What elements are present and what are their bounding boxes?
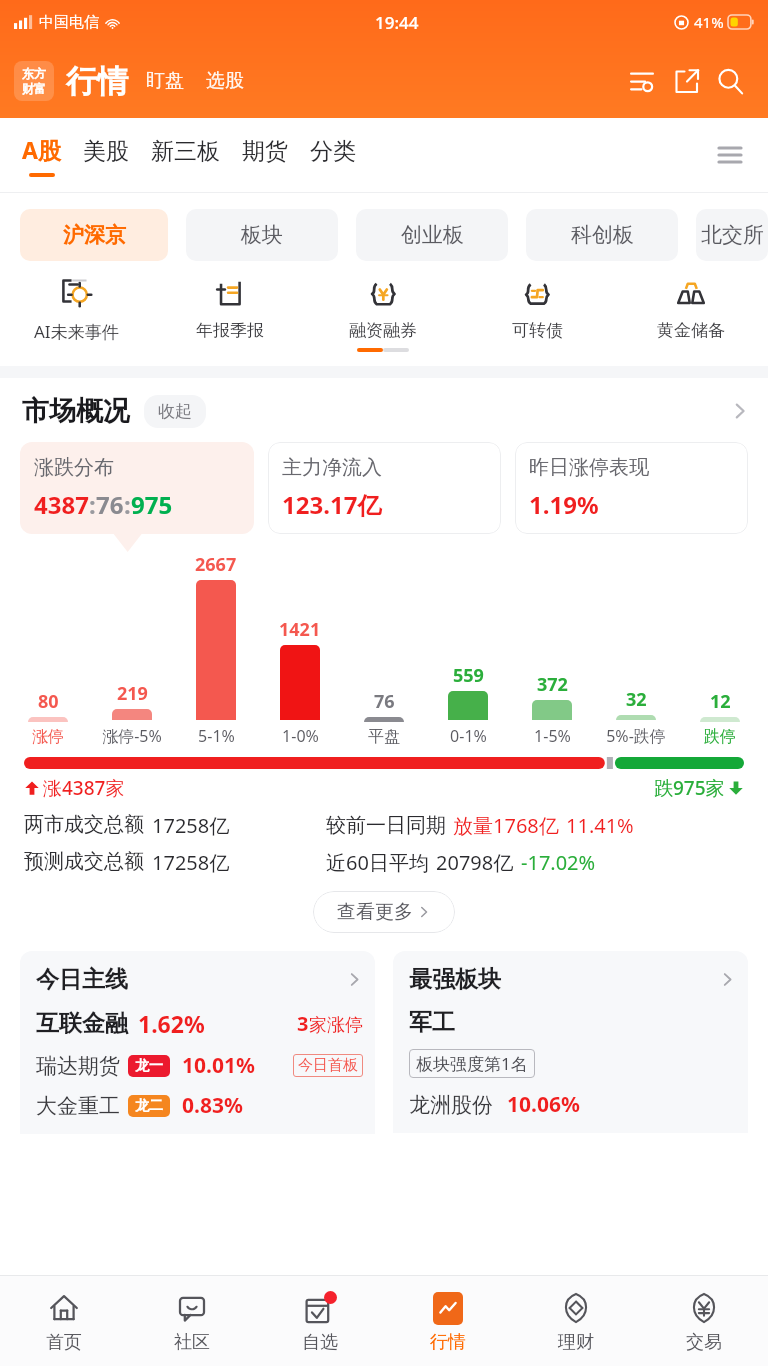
button[interactable]: 559 [426, 663, 510, 747]
staticText: 372 [537, 672, 568, 697]
staticText: 5-1% [198, 725, 235, 747]
staticText: 0-1% [450, 725, 487, 747]
staticText: 主力净流入 [282, 455, 382, 480]
staticText: 理财 [558, 1331, 594, 1354]
staticText: 今日首板 [298, 1056, 358, 1075]
staticText: 东方 [22, 66, 46, 81]
staticText: 11.41% [566, 812, 634, 839]
staticText: 选股 [206, 69, 244, 93]
staticText: 收起 [158, 401, 192, 422]
staticText: 昨日涨停表现 [529, 455, 649, 480]
button[interactable]: 融资融券 [306, 267, 460, 358]
staticText: 行情 [430, 1331, 466, 1354]
staticText: 1-5% [534, 725, 571, 747]
staticText: 2667 [195, 552, 237, 577]
staticText: : [89, 488, 96, 521]
staticText: 19:44 [375, 11, 419, 34]
button[interactable]: 科创板 [526, 209, 678, 261]
button[interactable]: 新三板 [151, 137, 242, 174]
staticText: 龙一 [135, 1057, 163, 1075]
button[interactable]: 社区 [128, 1276, 256, 1366]
button[interactable]: Share [664, 59, 708, 103]
staticText: 涨跌分布 [34, 455, 114, 480]
button[interactable]: 黄金储备 [614, 267, 768, 354]
staticText: 可转债 [512, 320, 563, 341]
button[interactable]: 年报季报 [153, 267, 306, 354]
staticText: 219 [117, 681, 148, 706]
staticText: 首页 [46, 1331, 82, 1354]
button[interactable]: 219 [90, 681, 174, 747]
staticText: A股 [22, 134, 61, 165]
button[interactable]: 最强板块 [393, 951, 748, 1133]
staticText: 龙洲股份 [409, 1092, 493, 1118]
button[interactable]: 80 [6, 689, 90, 747]
staticText: 板块 [241, 222, 283, 248]
staticText: 沪深京 [63, 222, 126, 248]
button[interactable]: 选股 [204, 63, 246, 99]
staticText: 社区 [174, 1331, 210, 1354]
button[interactable]: 创业板 [356, 209, 508, 261]
staticText: 0.83% [182, 1091, 243, 1120]
staticText: 涨停 [32, 727, 64, 747]
button[interactable]: 372 [510, 672, 594, 747]
button[interactable]: 板块 [186, 209, 338, 261]
button[interactable]: 主力净流入 [268, 442, 501, 534]
button[interactable]: 美股 [83, 137, 151, 174]
button[interactable]: 昨日涨停表现 [515, 442, 748, 534]
staticText: 分类 [310, 137, 356, 166]
button[interactable]: 理财 [512, 1276, 640, 1366]
staticText: 最强板块 [409, 965, 501, 994]
staticText: 互联金融 [36, 1009, 128, 1038]
button[interactable]: 1421 [258, 617, 342, 747]
staticText: 平盘 [368, 727, 400, 747]
staticText: 融资融券 [349, 320, 417, 341]
staticText: 军工 [409, 1008, 455, 1037]
staticText: 32 [626, 687, 647, 712]
staticText: 1.19% [529, 488, 599, 521]
button[interactable]: 期货 [242, 137, 310, 174]
button[interactable]: 今日主线 [20, 951, 375, 1134]
staticText: 12 [710, 689, 731, 714]
staticText: 科创板 [571, 222, 634, 248]
staticText: 放量1768亿 [453, 812, 559, 839]
staticText: 涨停-5% [102, 725, 162, 747]
button[interactable]: Filter settings [620, 59, 664, 103]
button[interactable]: 32 [594, 687, 678, 747]
staticText: -17.02% [521, 849, 596, 876]
staticText: 两市成交总额 [24, 812, 144, 837]
staticText: 975 [131, 488, 173, 521]
staticText: 中国电信 [39, 13, 99, 32]
button[interactable]: 盯盘 [144, 63, 186, 99]
staticText: 近60日平均 [326, 849, 429, 876]
staticText: 跌975家 [654, 775, 725, 801]
staticText: 559 [453, 663, 484, 688]
button[interactable]: 12 [678, 689, 762, 747]
staticText: : [124, 488, 131, 521]
staticText: 1421 [279, 617, 321, 642]
button[interactable]: 行情 [384, 1276, 512, 1366]
button[interactable]: A股 [22, 134, 83, 177]
button[interactable]: 交易 [640, 1276, 768, 1366]
staticText: 10.01% [182, 1051, 255, 1080]
button[interactable]: Search [708, 59, 752, 103]
button[interactable]: 查看更多 [313, 891, 455, 933]
staticText: 财富 [22, 81, 46, 96]
staticText: 今日主线 [36, 965, 128, 994]
staticText: 1-0% [282, 725, 319, 747]
button[interactable]: 自选 [256, 1276, 384, 1366]
button[interactable]: 涨跌分布 [20, 442, 254, 534]
button[interactable]: 2667 [174, 552, 258, 747]
button[interactable]: 首页 [0, 1276, 128, 1366]
button[interactable]: More tabs [710, 135, 750, 175]
button[interactable]: 76 [342, 689, 426, 747]
button[interactable]: 分类 [310, 137, 356, 174]
button[interactable]: 东方 [14, 61, 54, 101]
staticText: 盯盘 [146, 69, 184, 93]
staticText: 新三板 [151, 137, 220, 166]
staticText: 交易 [686, 1331, 722, 1354]
button[interactable]: 北交所 [696, 209, 768, 261]
button[interactable]: 沪深京 [20, 209, 168, 261]
button[interactable]: 市场概况 [22, 394, 750, 428]
button[interactable]: 可转债 [460, 267, 614, 354]
button[interactable]: AI未来事件 [0, 267, 153, 356]
